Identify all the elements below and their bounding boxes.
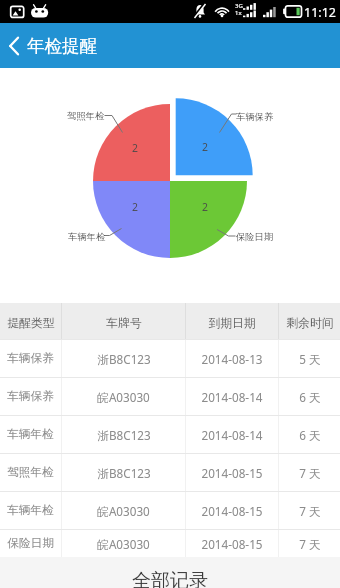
staticText: 保险日期 xyxy=(236,231,274,243)
button[interactable]: Back xyxy=(0,23,27,68)
staticText: 6 天 xyxy=(299,389,321,405)
staticText: 全部记录 xyxy=(132,569,208,588)
staticText: 剩余时间 xyxy=(286,316,334,331)
staticText: 2014-08-14 xyxy=(201,427,263,443)
staticText: 7 天 xyxy=(299,465,321,481)
button[interactable]: 车辆年检 xyxy=(0,416,340,453)
staticText: 车辆保养 xyxy=(236,111,274,123)
staticText: 车辆保养 xyxy=(7,351,54,366)
staticText: 2 xyxy=(202,200,209,214)
staticText: 提醒类型 xyxy=(7,316,55,331)
staticText: 到期日期 xyxy=(208,316,256,331)
staticText: 2014-08-15 xyxy=(201,465,263,481)
staticText: 2 xyxy=(202,140,209,154)
staticText: 浙B8C123 xyxy=(97,427,151,443)
staticText: 2 xyxy=(132,141,139,155)
button[interactable]: 保险日期 xyxy=(0,530,340,557)
staticText: 皖A03030 xyxy=(97,503,150,519)
button[interactable]: 全部记录 xyxy=(0,557,340,588)
button[interactable]: 车辆保养 xyxy=(0,340,340,377)
staticText: 浙B8C123 xyxy=(97,351,151,367)
staticText: 车辆年检 xyxy=(7,503,54,518)
staticText: 驾照年检 xyxy=(7,465,54,480)
staticText: 1x xyxy=(235,9,242,17)
staticText: 2 xyxy=(132,200,139,214)
staticText: 车辆保养 xyxy=(7,389,54,404)
button[interactable]: 车辆年检 xyxy=(0,492,340,529)
button[interactable]: 驾照年检 xyxy=(0,454,340,491)
staticText: 保险日期 xyxy=(7,536,54,551)
staticText: 7 天 xyxy=(299,536,321,552)
staticText: 车辆年检 xyxy=(68,231,106,243)
staticText: 年检提醒 xyxy=(27,35,97,57)
staticText: 2014-08-15 xyxy=(201,536,263,552)
staticText: 车辆年检 xyxy=(7,427,54,442)
staticText: 5 天 xyxy=(299,351,321,367)
staticText: 6 天 xyxy=(299,427,321,443)
staticText: 2014-08-15 xyxy=(201,503,263,519)
staticText: 3G xyxy=(235,2,243,10)
staticText: 7 天 xyxy=(299,503,321,519)
staticText: 浙B8C123 xyxy=(97,465,151,481)
staticText: 2014-08-14 xyxy=(201,389,263,405)
staticText: 11:12 xyxy=(304,4,336,21)
staticText: 驾照年检 xyxy=(67,110,105,122)
staticText: 皖A03030 xyxy=(97,536,150,552)
staticText: 车牌号 xyxy=(106,316,142,331)
staticText: 2014-08-13 xyxy=(201,351,263,367)
button[interactable]: 车辆保养 xyxy=(0,378,340,415)
staticText: 皖A03030 xyxy=(97,389,150,405)
